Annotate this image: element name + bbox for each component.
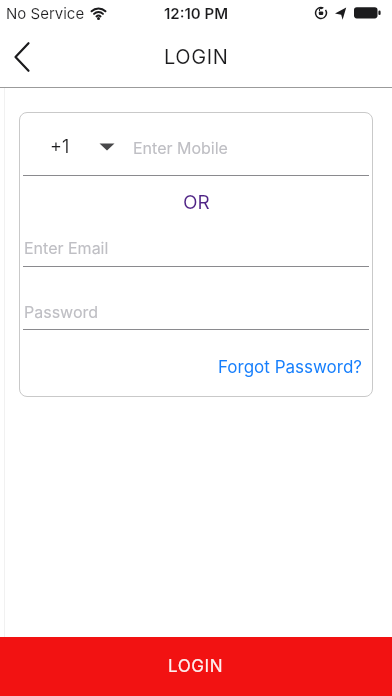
button[interactable]: Password (24, 293, 373, 329)
staticText: Password (24, 302, 99, 321)
button[interactable]: LOGIN (0, 637, 392, 696)
staticText: 12:10 PM (164, 4, 228, 22)
staticText: +1 (50, 136, 70, 158)
button[interactable]: +1 (50, 119, 373, 175)
button[interactable] (14, 42, 30, 72)
staticText: Enter Email (24, 238, 109, 257)
staticText: Enter Mobile (133, 138, 228, 157)
staticText: LOGIN (168, 656, 224, 677)
staticText: OR (183, 191, 210, 214)
button[interactable]: Forgot Password? (218, 357, 363, 378)
button[interactable]: Enter Email (24, 228, 373, 266)
staticText: No Service (6, 4, 85, 22)
staticText: LOGIN (164, 45, 229, 69)
